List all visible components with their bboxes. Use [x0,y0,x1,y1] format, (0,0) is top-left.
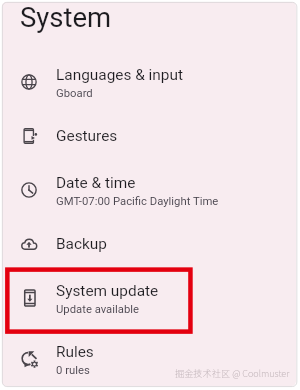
staticText: Rules [56,343,94,361]
staticText: Update available [56,303,139,316]
staticText: Backup [56,235,107,253]
button[interactable]: Rules [2,336,296,382]
button[interactable]: Languages and input [2,59,296,105]
staticText: Date & time [56,174,136,192]
staticText: 0 rules [56,364,90,377]
staticText: 掘金技术社区 @ Coolmuster [175,366,290,379]
staticText: Languages & input [56,66,184,84]
staticText: GMT-07:00 Pacific Daylight Time [56,195,219,208]
button[interactable]: System update [2,275,296,321]
staticText: Gestures [56,127,118,145]
button[interactable]: Backup [2,220,296,266]
staticText: System [20,2,112,33]
staticText: Gboard [56,87,93,100]
staticText: System update [56,282,159,300]
button[interactable]: Gestures [2,113,296,159]
button[interactable]: Date and time [2,167,296,213]
